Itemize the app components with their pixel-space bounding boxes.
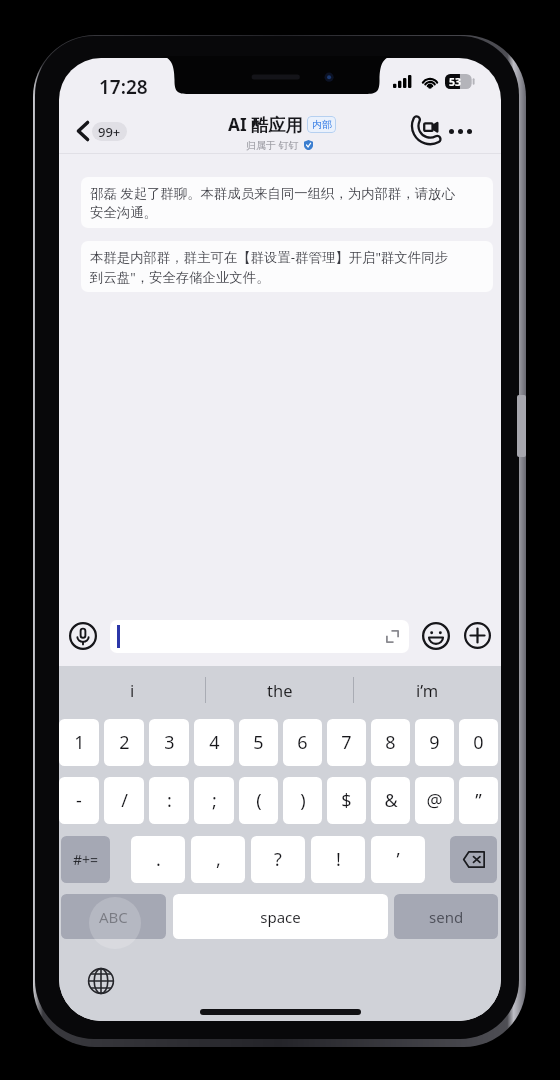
- staticText: /: [121, 788, 128, 813]
- staticText: ?: [274, 847, 282, 872]
- button[interactable]: More options: [444, 115, 476, 147]
- button[interactable]: ABC: [61, 894, 166, 939]
- staticText: 6: [297, 730, 308, 755]
- button[interactable]: Switch language: [84, 964, 118, 998]
- button[interactable]: send: [394, 894, 498, 939]
- button[interactable]: i’m: [354, 666, 501, 714]
- staticText: 1: [74, 730, 85, 755]
- staticText: ABC: [99, 907, 128, 927]
- button[interactable]: ): [283, 777, 322, 824]
- button[interactable]: ;: [194, 777, 234, 824]
- staticText: ;: [212, 788, 217, 813]
- button[interactable]: 本群是内部群，群主可在【群设置-群管理】开启"群文件同步到云盘"，安全存储企业文…: [81, 241, 493, 292]
- button[interactable]: 邵磊 发起了群聊。本群成员来自同一组织，为内部群，请放心安全沟通。: [81, 177, 493, 228]
- staticText: ): [300, 788, 306, 813]
- staticText: #+=: [73, 850, 99, 869]
- button[interactable]: Backspace: [450, 836, 497, 883]
- staticText: 内部: [312, 118, 332, 131]
- button[interactable]: .: [131, 836, 185, 883]
- button[interactable]: Emoji: [418, 618, 453, 653]
- button[interactable]: 0: [459, 719, 498, 766]
- button[interactable]: space: [173, 894, 388, 939]
- staticText: !: [336, 847, 341, 872]
- button[interactable]: 9: [415, 719, 454, 766]
- staticText: 4: [209, 730, 220, 755]
- staticText: 2: [119, 730, 130, 755]
- staticText: 9: [429, 730, 440, 755]
- staticText: AI 酷应用: [228, 113, 303, 136]
- button[interactable]: #+=: [61, 836, 110, 883]
- button[interactable]: !: [311, 836, 365, 883]
- staticText: i’m: [416, 679, 439, 701]
- button[interactable]: 6: [283, 719, 322, 766]
- staticText: 5: [253, 730, 264, 755]
- button[interactable]: ?: [251, 836, 305, 883]
- button[interactable]: 4: [194, 719, 234, 766]
- button[interactable]: [110, 620, 409, 653]
- staticText: 归属于 钉钉: [246, 138, 299, 152]
- staticText: ”: [475, 788, 482, 813]
- staticText: @: [426, 788, 443, 813]
- staticText: (: [256, 788, 262, 813]
- staticText: 8: [385, 730, 396, 755]
- button[interactable]: the: [206, 666, 353, 714]
- button[interactable]: 5: [239, 719, 278, 766]
- button[interactable]: -: [59, 777, 99, 824]
- button[interactable]: 2: [104, 719, 144, 766]
- staticText: the: [267, 679, 293, 701]
- staticText: i: [130, 679, 135, 701]
- staticText: ,: [216, 847, 221, 872]
- staticText: 99+: [98, 123, 121, 141]
- button[interactable]: 3: [149, 719, 189, 766]
- button[interactable]: (: [239, 777, 278, 824]
- staticText: 邵磊 发起了群聊。本群成员来自同一组织，为内部群，请放心安全沟通。: [90, 184, 461, 221]
- button[interactable]: 1: [59, 719, 99, 766]
- staticText: ’: [396, 847, 400, 872]
- button[interactable]: &: [371, 777, 410, 824]
- button[interactable]: Power: [517, 395, 526, 457]
- staticText: space: [260, 907, 301, 927]
- button[interactable]: Video call: [406, 114, 443, 148]
- staticText: 7: [341, 730, 352, 755]
- button[interactable]: 7: [327, 719, 366, 766]
- staticText: $: [341, 788, 352, 813]
- button[interactable]: ,: [191, 836, 245, 883]
- button[interactable]: :: [149, 777, 189, 824]
- button[interactable]: Voice input: [65, 618, 100, 653]
- staticText: .: [156, 847, 161, 872]
- button[interactable]: Add attachment: [460, 618, 495, 653]
- staticText: :: [167, 788, 172, 813]
- button[interactable]: @: [415, 777, 454, 824]
- staticText: 本群是内部群，群主可在【群设置-群管理】开启"群文件同步到云盘"，安全存储企业文…: [90, 248, 461, 285]
- staticText: -: [76, 788, 82, 813]
- button[interactable]: 8: [371, 719, 410, 766]
- staticText: 17:28: [99, 74, 148, 100]
- staticText: send: [429, 907, 464, 927]
- button[interactable]: Back: [71, 116, 133, 146]
- button[interactable]: ”: [459, 777, 498, 824]
- staticText: 0: [473, 730, 484, 755]
- staticText: &: [384, 788, 398, 813]
- button[interactable]: i: [59, 666, 205, 714]
- button[interactable]: $: [327, 777, 366, 824]
- staticText: 53: [449, 75, 462, 89]
- staticText: 3: [164, 730, 175, 755]
- button[interactable]: ’: [371, 836, 425, 883]
- button[interactable]: /: [104, 777, 144, 824]
